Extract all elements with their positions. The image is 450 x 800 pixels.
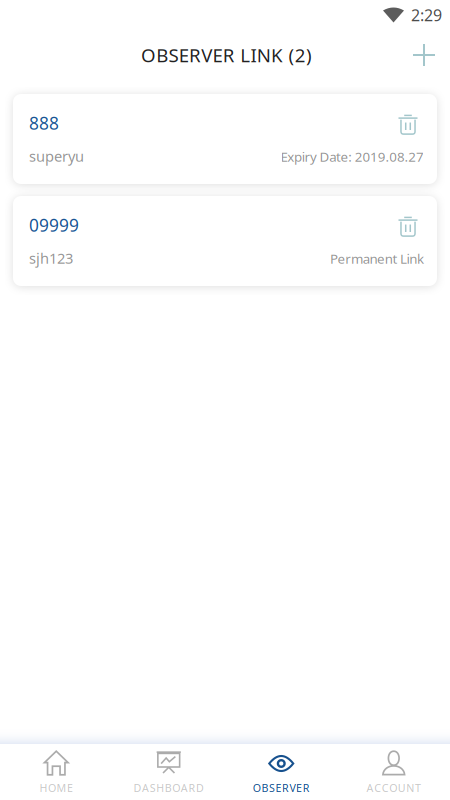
button[interactable]: Delete 888 bbox=[392, 109, 424, 137]
staticText: ACCOUNT bbox=[367, 781, 421, 795]
staticText: HOME bbox=[39, 781, 73, 795]
staticText: 888 bbox=[29, 111, 59, 134]
staticText: Permanent Link bbox=[330, 250, 424, 267]
staticText: OBSERVER LINK (2) bbox=[141, 43, 312, 67]
staticText: OBSERVER bbox=[253, 781, 310, 795]
staticText: 09999 bbox=[29, 213, 79, 236]
staticText: superyu bbox=[29, 146, 84, 166]
button[interactable]: Add bbox=[401, 32, 447, 78]
button[interactable]: DASHBOARD bbox=[112, 744, 225, 800]
button[interactable]: 888 bbox=[13, 94, 437, 184]
staticText: sjh123 bbox=[29, 248, 73, 268]
button[interactable]: 09999 bbox=[13, 196, 437, 286]
staticText: 2:29 bbox=[411, 4, 442, 26]
button[interactable]: Delete 09999 bbox=[392, 211, 424, 239]
staticText: DASHBOARD bbox=[134, 781, 204, 795]
button[interactable]: ACCOUNT bbox=[337, 744, 450, 800]
button[interactable]: OBSERVER bbox=[225, 744, 337, 800]
button[interactable]: HOME bbox=[0, 744, 112, 800]
staticText: Expiry Date: 2019.08.27 bbox=[281, 148, 424, 165]
